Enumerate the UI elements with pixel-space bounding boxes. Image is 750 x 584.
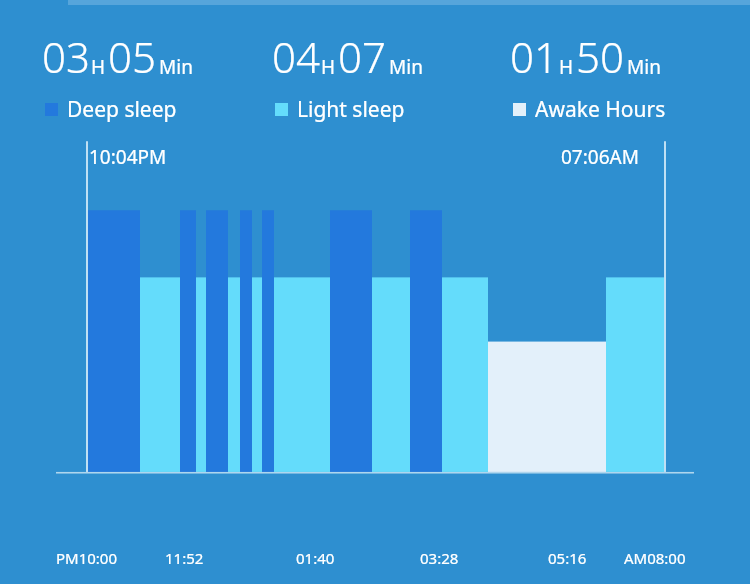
staticText: 01: [510, 28, 558, 85]
staticText: 07: [338, 28, 386, 85]
staticText: Deep sleep: [67, 95, 177, 124]
staticText: 03: [42, 28, 90, 85]
staticText: AM08:00: [624, 548, 686, 568]
staticText: H: [559, 54, 574, 80]
staticText: Min: [159, 54, 193, 80]
staticText: 01:40: [296, 548, 335, 568]
staticText: H: [321, 54, 336, 80]
staticText: Min: [389, 54, 423, 80]
staticText: Min: [627, 54, 661, 80]
staticText: PM10:00: [56, 548, 118, 568]
button[interactable]: 03: [0, 28, 250, 124]
staticText: 05:16: [548, 548, 587, 568]
staticText: 50: [576, 28, 624, 85]
staticText: 10:04PM: [89, 144, 167, 170]
staticText: 11:52: [165, 548, 204, 568]
button[interactable]: 04: [250, 28, 500, 124]
staticText: H: [91, 54, 106, 80]
staticText: 04: [272, 28, 320, 85]
staticText: Light sleep: [297, 95, 405, 124]
staticText: Awake Hours: [535, 95, 666, 124]
button[interactable]: 01: [500, 28, 750, 124]
staticText: 05: [108, 28, 156, 85]
staticText: 03:28: [420, 548, 459, 568]
staticText: 07:06AM: [561, 144, 639, 170]
button[interactable]: 10:04PM: [0, 124, 750, 540]
